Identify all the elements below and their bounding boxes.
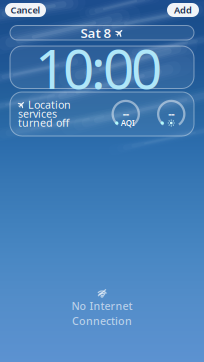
button[interactable]: UV Index xyxy=(148,92,194,136)
button[interactable]: Cancel xyxy=(5,3,46,17)
staticText: turned off xyxy=(18,115,69,130)
button[interactable]: Air Quality xyxy=(103,92,148,136)
staticText: -- xyxy=(123,106,129,120)
staticText: Connection xyxy=(72,314,132,328)
staticText: Add xyxy=(174,4,192,16)
staticText: Location xyxy=(28,97,71,112)
staticText: Sat 8 xyxy=(80,24,111,42)
staticText: Cancel xyxy=(10,4,40,16)
button[interactable]: Location xyxy=(10,92,103,136)
staticText: 10:00 xyxy=(35,31,162,104)
staticText: services xyxy=(18,106,57,121)
button[interactable]: Add xyxy=(167,3,199,17)
button[interactable]: Sat 8 xyxy=(10,25,194,40)
staticText: No Internet xyxy=(71,299,132,313)
staticText: AQI xyxy=(121,118,135,128)
button[interactable]: 10:00 xyxy=(10,46,194,88)
staticText: -- xyxy=(168,106,174,120)
